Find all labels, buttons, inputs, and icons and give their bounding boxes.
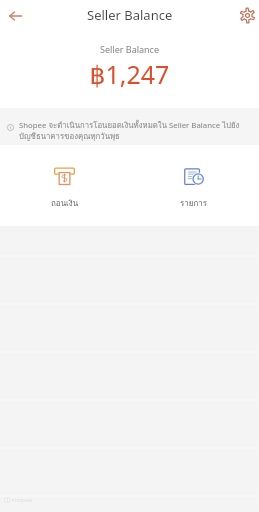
button[interactable]: Settings bbox=[235, 3, 259, 27]
staticText: ถอนเงิน bbox=[51, 197, 79, 210]
button[interactable]: ถอนเงิน bbox=[0, 145, 129, 226]
staticText: Seller Balance bbox=[87, 6, 173, 24]
staticText: Seller Balance bbox=[0, 43, 259, 55]
staticText: ฿1,247 bbox=[0, 57, 259, 91]
button[interactable]: Back bbox=[3, 3, 28, 28]
staticText: ⓘ shopee bbox=[4, 496, 33, 504]
staticText: Shopee จะดำเนินการโอนยอดเงินทั้งหมดใน Se… bbox=[19, 119, 250, 142]
button[interactable]: รายการ bbox=[129, 145, 259, 226]
staticText: รายการ bbox=[180, 197, 208, 210]
